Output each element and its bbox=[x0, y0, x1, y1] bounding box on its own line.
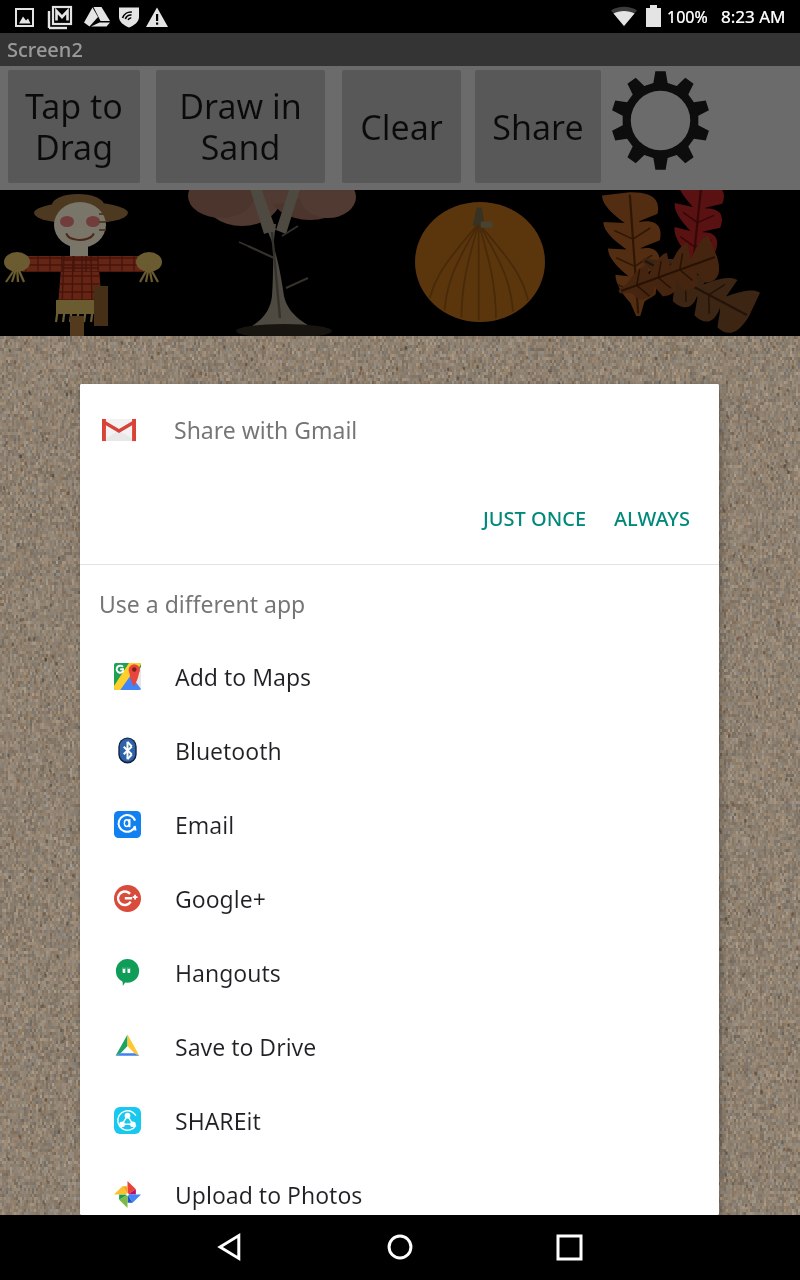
staticText: SHAREit bbox=[175, 1105, 261, 1136]
staticText: ALWAYS bbox=[614, 505, 690, 532]
button[interactable]: Tap to Drag bbox=[8, 70, 140, 183]
staticText: Add to Maps bbox=[175, 661, 312, 692]
staticText: Upload to Photos bbox=[175, 1179, 363, 1210]
staticText: Hangouts bbox=[175, 957, 281, 988]
button[interactable]: SHAREit bbox=[80, 1083, 719, 1157]
staticText: Email bbox=[175, 809, 235, 840]
staticText: Clear bbox=[360, 104, 443, 150]
button[interactable]: Google+ bbox=[80, 861, 719, 935]
button[interactable]: Share with Gmail bbox=[80, 384, 719, 474]
staticText: Screen2 bbox=[7, 36, 83, 63]
button[interactable]: Clear bbox=[342, 70, 461, 183]
button[interactable]: Settings bbox=[611, 71, 710, 170]
button[interactable]: Add to Maps bbox=[80, 639, 719, 713]
staticText: Tap to Drag bbox=[25, 83, 123, 170]
button[interactable]: Bluetooth bbox=[80, 713, 719, 787]
button[interactable]: Email bbox=[80, 787, 719, 861]
button[interactable]: Upload to Photos bbox=[80, 1157, 719, 1215]
staticText: 8:23 AM bbox=[721, 5, 786, 28]
button[interactable]: Hangouts bbox=[80, 935, 719, 1009]
staticText: Bluetooth bbox=[175, 735, 282, 766]
staticText: JUST ONCE bbox=[483, 505, 587, 532]
button[interactable]: Share bbox=[475, 70, 601, 183]
staticText: Share bbox=[492, 104, 584, 150]
button[interactable]: Draw in Sand bbox=[156, 70, 325, 183]
button[interactable]: Home bbox=[368, 1215, 432, 1279]
staticText: Save to Drive bbox=[175, 1031, 317, 1062]
button[interactable]: JUST ONCE bbox=[473, 493, 597, 544]
button[interactable]: Save to Drive bbox=[80, 1009, 719, 1083]
staticText: Share with Gmail bbox=[174, 414, 358, 445]
staticText: Use a different app bbox=[99, 588, 306, 619]
button[interactable]: Back bbox=[199, 1215, 263, 1279]
staticText: 100% bbox=[667, 6, 708, 28]
staticText: Draw in Sand bbox=[179, 83, 302, 170]
staticText: Google+ bbox=[175, 883, 266, 914]
button[interactable]: Recent apps bbox=[537, 1215, 601, 1279]
button[interactable]: ALWAYS bbox=[604, 493, 700, 544]
